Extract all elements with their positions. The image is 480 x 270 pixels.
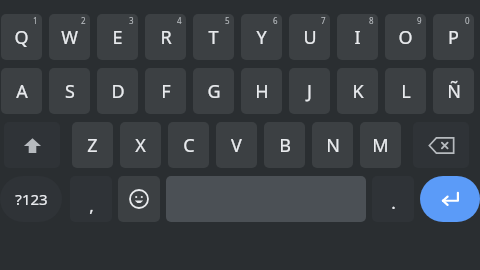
button[interactable]: X — [120, 122, 161, 168]
button[interactable]: M — [360, 122, 401, 168]
staticText: T — [208, 25, 219, 50]
staticText: I — [354, 25, 361, 50]
staticText: M — [372, 133, 389, 158]
button[interactable]: Q — [1, 14, 42, 60]
button[interactable]: ?123 — [0, 176, 62, 222]
staticText: Z — [87, 133, 98, 158]
button[interactable]: O — [385, 14, 426, 60]
staticText: K — [352, 79, 364, 104]
button[interactable]: W — [49, 14, 90, 60]
staticText: Ñ — [447, 79, 461, 104]
staticText: 3 — [129, 15, 134, 26]
button[interactable]: Enter — [420, 176, 480, 222]
staticText: 1 — [33, 15, 38, 26]
button[interactable]: P — [433, 14, 474, 60]
button[interactable]: Z — [72, 122, 113, 168]
staticText: 6 — [273, 15, 278, 26]
button[interactable]: A — [1, 68, 42, 114]
button[interactable]: T — [193, 14, 234, 60]
staticText: J — [307, 79, 312, 104]
staticText: E — [112, 25, 123, 50]
staticText: 5 — [225, 15, 230, 26]
staticText: ?123 — [15, 189, 48, 209]
button[interactable]: C — [168, 122, 209, 168]
staticText: D — [111, 79, 125, 104]
staticText: R — [160, 25, 172, 50]
staticText: S — [65, 79, 75, 104]
staticText: Q — [14, 25, 29, 50]
staticText: 7 — [321, 15, 326, 26]
button[interactable]: Y — [241, 14, 282, 60]
button[interactable]: H — [241, 68, 282, 114]
button[interactable]: V — [216, 122, 257, 168]
staticText: O — [398, 25, 413, 50]
button[interactable]: K — [337, 68, 378, 114]
staticText: 9 — [417, 15, 422, 26]
button[interactable]: Period — [372, 176, 414, 222]
staticText: P — [448, 25, 459, 50]
button[interactable]: N — [312, 122, 353, 168]
button[interactable]: Emoji — [118, 176, 160, 222]
button[interactable]: Ñ — [433, 68, 474, 114]
staticText: B — [279, 133, 291, 158]
staticText: F — [161, 79, 171, 104]
staticText: H — [255, 79, 269, 104]
staticText: . — [391, 191, 396, 214]
button[interactable]: Shift — [4, 122, 60, 168]
staticText: W — [61, 25, 78, 50]
button[interactable]: L — [385, 68, 426, 114]
button[interactable]: D — [97, 68, 138, 114]
staticText: L — [401, 79, 411, 104]
staticText: 2 — [81, 15, 86, 26]
staticText: C — [183, 133, 195, 158]
button[interactable]: S — [49, 68, 90, 114]
button[interactable]: Backspace — [413, 122, 469, 168]
staticText: Y — [256, 25, 267, 50]
button[interactable]: U — [289, 14, 330, 60]
button[interactable]: R — [145, 14, 186, 60]
button[interactable]: Comma — [70, 176, 112, 222]
staticText: A — [16, 79, 28, 104]
staticText: X — [135, 133, 146, 158]
button[interactable]: I — [337, 14, 378, 60]
staticText: V — [231, 133, 242, 158]
staticText: N — [326, 133, 340, 158]
button[interactable]: G — [193, 68, 234, 114]
staticText: 4 — [177, 15, 182, 26]
staticText: , — [89, 194, 94, 217]
button[interactable]: E — [97, 14, 138, 60]
button[interactable]: F — [145, 68, 186, 114]
staticText: U — [303, 25, 317, 50]
staticText: 8 — [369, 15, 374, 26]
button[interactable]: B — [264, 122, 305, 168]
button[interactable]: J — [289, 68, 330, 114]
staticText: G — [207, 79, 221, 104]
staticText: 0 — [465, 15, 470, 26]
